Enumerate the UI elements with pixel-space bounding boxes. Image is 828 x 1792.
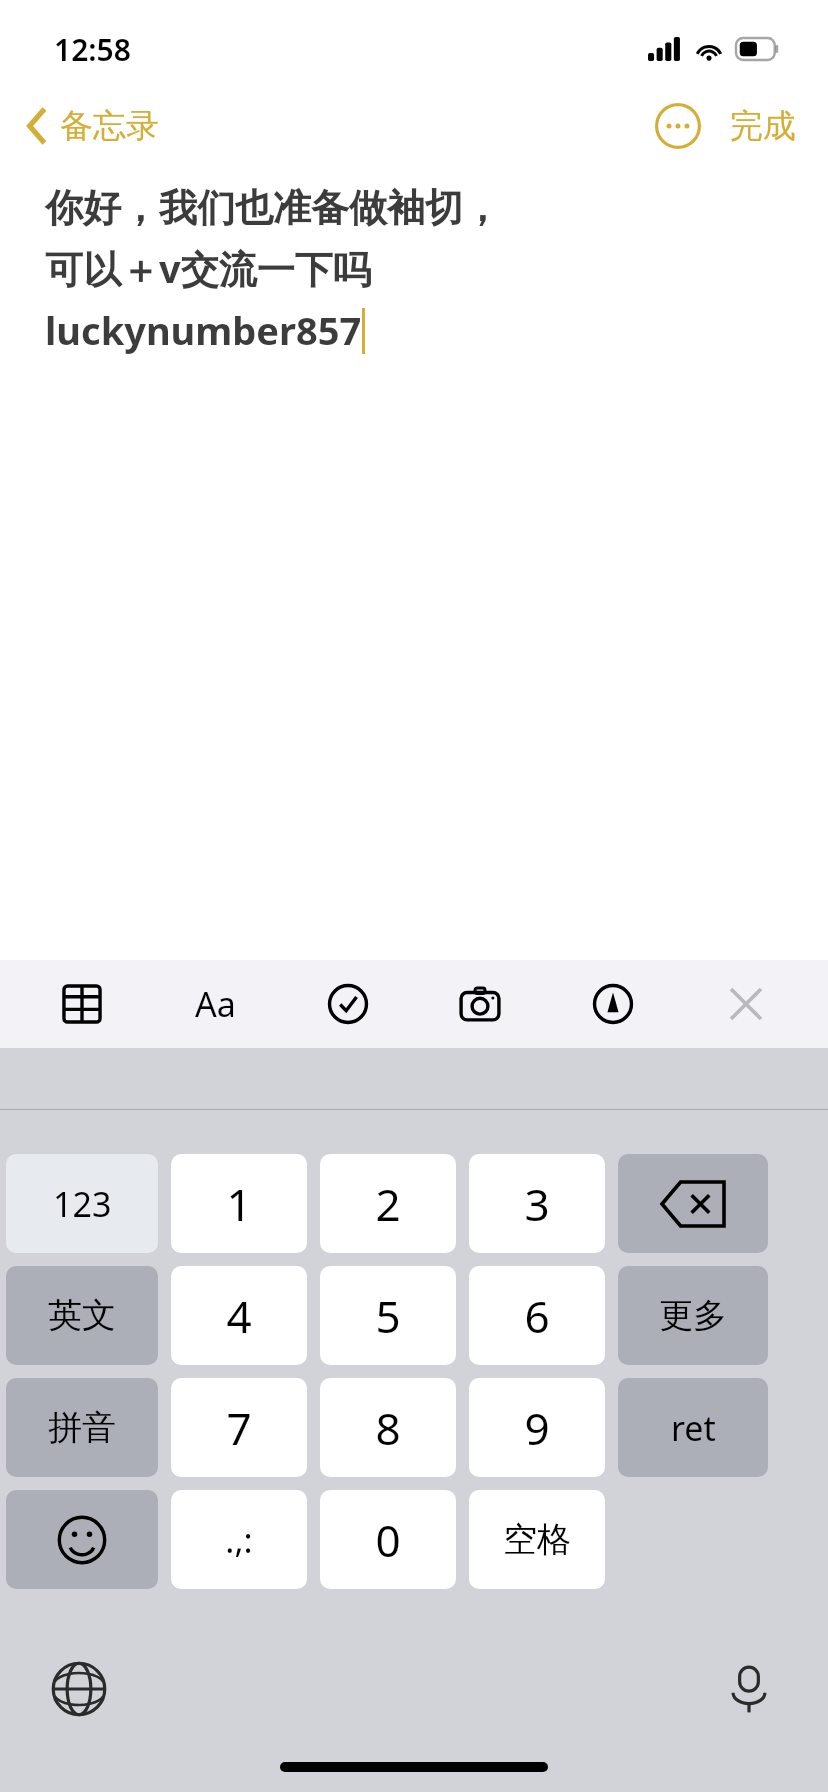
button[interactable]: 备忘录: [22, 101, 165, 151]
staticText: 更多: [659, 1294, 727, 1337]
button[interactable]: 5: [320, 1266, 456, 1365]
button[interactable]: 7: [171, 1378, 307, 1477]
button[interactable]: 2: [320, 1154, 456, 1253]
staticText: 拼音: [48, 1406, 116, 1449]
button[interactable]: ret: [618, 1378, 768, 1477]
staticText: 0: [375, 1510, 401, 1570]
button[interactable]: 6: [469, 1266, 605, 1365]
staticText: 英文: [48, 1294, 116, 1337]
button[interactable]: 3: [469, 1154, 605, 1253]
staticText: 完成: [730, 105, 796, 147]
staticText: .,:: [225, 1517, 253, 1563]
button[interactable]: .,:: [171, 1490, 307, 1589]
button[interactable]: Dictate: [712, 1652, 786, 1726]
staticText: 1: [226, 1174, 252, 1234]
button[interactable]: 空格: [469, 1490, 605, 1589]
staticText: 空格: [503, 1518, 571, 1561]
button[interactable]: Emoji: [6, 1490, 158, 1589]
staticText: 可以＋v交流一下吗: [45, 242, 371, 294]
button[interactable]: 9: [469, 1378, 605, 1477]
button[interactable]: Checklist: [322, 978, 374, 1030]
staticText: ret: [671, 1405, 716, 1451]
button[interactable]: 8: [320, 1378, 456, 1477]
button[interactable]: Camera: [454, 978, 506, 1030]
staticText: 你好，我们也准备做袖切，: [45, 184, 501, 232]
staticText: 8: [375, 1398, 401, 1458]
button[interactable]: Markup: [587, 978, 639, 1030]
button[interactable]: More options: [650, 98, 706, 154]
button[interactable]: 1: [171, 1154, 307, 1253]
button[interactable]: 4: [171, 1266, 307, 1365]
button[interactable]: Format text: [189, 978, 241, 1030]
button[interactable]: 123: [6, 1154, 158, 1253]
button[interactable]: 0: [320, 1490, 456, 1589]
staticText: 7: [226, 1398, 252, 1458]
button[interactable]: Switch keyboard: [42, 1652, 116, 1726]
staticText: 9: [524, 1398, 550, 1458]
button[interactable]: 拼音: [6, 1378, 158, 1477]
button[interactable]: Table: [56, 978, 108, 1030]
button[interactable]: 英文: [6, 1266, 158, 1365]
button[interactable]: Delete: [618, 1154, 768, 1253]
staticText: 2: [375, 1174, 401, 1234]
staticText: 3: [524, 1174, 550, 1234]
staticText: 123: [53, 1181, 112, 1227]
button[interactable]: Close keyboard: [720, 978, 772, 1030]
button[interactable]: 更多: [618, 1266, 768, 1365]
button[interactable]: 完成: [724, 99, 802, 153]
staticText: 备忘录: [60, 105, 159, 147]
staticText: 6: [524, 1286, 550, 1346]
staticText: 4: [226, 1286, 252, 1346]
staticText: 12:58: [54, 29, 131, 70]
staticText: 5: [375, 1286, 401, 1346]
staticText: luckynumber857: [45, 304, 362, 356]
staticText: Aa: [195, 981, 236, 1027]
